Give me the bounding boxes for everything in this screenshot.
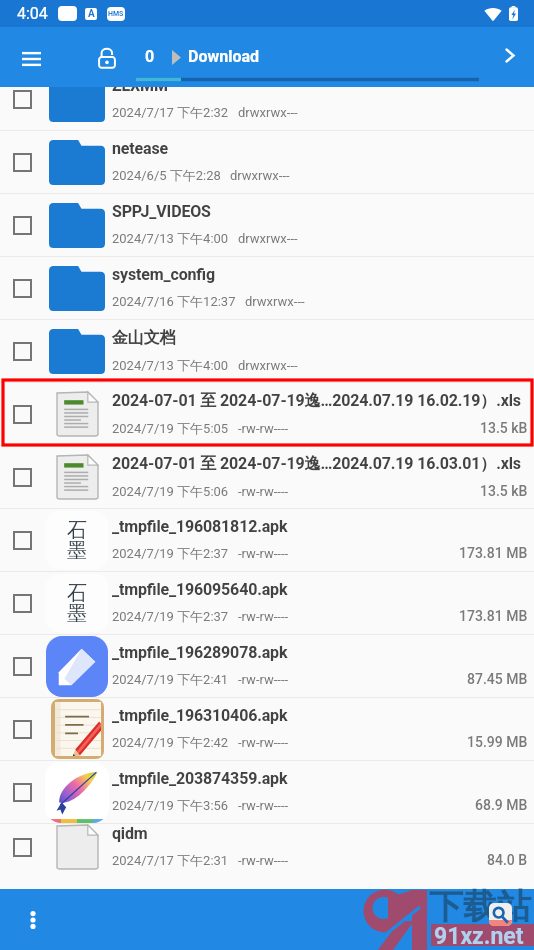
staticText: _tmpfile_196081812.apk (112, 517, 288, 536)
staticText: ZLXMM (112, 87, 168, 95)
button[interactable]: Select ZLXMM (0, 87, 534, 131)
staticText: -rw-rw---- (238, 853, 289, 868)
staticText: drwxrwx--- (238, 358, 298, 373)
staticText: 石 墨 (67, 581, 87, 626)
staticText: drwxrwx--- (245, 294, 305, 309)
button[interactable]: Select _tmpfile_196095640.apk (0, 572, 44, 634)
button[interactable]: Select netease (0, 131, 534, 194)
staticText: 2024/7/19 下午5:05 (112, 420, 229, 436)
staticText: 13.5 kB (480, 483, 528, 499)
button[interactable]: Select netease (0, 131, 44, 193)
button[interactable]: Select _tmpfile_196289078.apk (0, 635, 44, 697)
staticText: 84.0 B (487, 852, 528, 868)
staticText: 2024-07-01 至 2024-07-19逸…2024.07.19 16.0… (112, 391, 521, 411)
staticText: -rw-rw---- (238, 609, 289, 624)
button[interactable]: Select 2024-07-01 至 2024-07-19逸…2024.07.… (0, 383, 534, 446)
staticText: drwxrwx--- (230, 168, 290, 183)
staticText: 2024/7/19 下午2:42 (112, 734, 229, 750)
staticText: 2024/7/19 下午3:56 (112, 797, 229, 813)
button[interactable]: Select qidm (0, 824, 44, 870)
button[interactable]: Select _tmpfile_196081812.apk (0, 509, 534, 572)
button[interactable]: Forward (492, 37, 528, 73)
staticText: 金山文档 (112, 328, 176, 348)
staticText: _tmpfile_203874359.apk (112, 769, 288, 788)
staticText: 87.45 MB (467, 671, 528, 687)
staticText: 0 (145, 47, 155, 66)
button[interactable]: Select system_config (0, 257, 534, 320)
staticText: 91xz.net (434, 923, 524, 945)
staticText: 2024/7/13 下午4:00 (112, 230, 229, 246)
staticText: 2024/7/13 下午4:00 (112, 357, 229, 373)
staticText: Download (188, 47, 259, 66)
button[interactable]: Select qidm (0, 824, 534, 870)
staticText: -rw-rw---- (238, 546, 289, 561)
button[interactable]: Select 金山文档 (0, 320, 534, 383)
staticText: 2024/7/19 下午2:41 (112, 671, 229, 687)
button[interactable]: More options (16, 903, 50, 937)
staticText: SPPJ_VIDEOS (112, 202, 211, 221)
staticText: 2024/7/19 下午2:37 (112, 545, 229, 561)
staticText: -rw-rw---- (238, 798, 289, 813)
staticText: 173.81 MB (459, 608, 528, 624)
button[interactable]: Select system_config (0, 257, 44, 319)
button[interactable]: Select ZLXMM (0, 87, 44, 130)
button[interactable]: Unlock (88, 39, 125, 76)
staticText: -rw-rw---- (238, 421, 289, 436)
button[interactable]: Select 2024-07-01 至 2024-07-19逸…2024.07.… (0, 383, 44, 445)
button[interactable]: Select _tmpfile_203874359.apk (0, 761, 534, 824)
button[interactable]: Menu (13, 41, 49, 77)
staticText: 2024/7/19 下午5:06 (112, 483, 229, 499)
staticText: netease (112, 139, 169, 158)
button[interactable]: Select SPPJ_VIDEOS (0, 194, 44, 256)
button[interactable]: Select 金山文档 (0, 320, 44, 382)
staticText: -rw-rw---- (238, 735, 289, 750)
staticText: A (88, 8, 95, 20)
button[interactable]: Select _tmpfile_196095640.apk (0, 572, 534, 635)
button[interactable]: Select 2024-07-01 至 2024-07-19逸…2024.07.… (0, 446, 44, 508)
staticText: 石 墨 (67, 518, 87, 563)
staticText: 2024-07-01 至 2024-07-19逸…2024.07.19 16.0… (112, 454, 521, 474)
staticText: 下载站 (429, 885, 531, 928)
staticText: 2024/7/17 下午2:32 (112, 104, 229, 120)
staticText: 15.99 MB (467, 734, 528, 750)
staticText: HMS (108, 10, 124, 18)
button[interactable]: Select _tmpfile_196310406.apk (0, 698, 44, 760)
staticText: 2024/7/19 下午2:37 (112, 608, 229, 624)
staticText: 4:04 (17, 4, 48, 23)
button[interactable]: Select _tmpfile_196310406.apk (0, 698, 534, 761)
staticText: qidm (112, 824, 148, 843)
staticText: 2024/7/17 下午2:31 (112, 852, 229, 868)
staticText: drwxrwx--- (238, 105, 298, 120)
button[interactable]: Select SPPJ_VIDEOS (0, 194, 534, 257)
button[interactable]: Select _tmpfile_196081812.apk (0, 509, 44, 571)
staticText: drwxrwx--- (238, 231, 298, 246)
staticText: 68.9 MB (475, 797, 528, 813)
staticText: _tmpfile_196095640.apk (112, 580, 288, 599)
staticText: 173.81 MB (459, 545, 528, 561)
button[interactable]: Select _tmpfile_196289078.apk (0, 635, 534, 698)
button[interactable]: Select _tmpfile_203874359.apk (0, 761, 44, 823)
staticText: _tmpfile_196289078.apk (112, 643, 288, 662)
staticText: -rw-rw---- (238, 484, 289, 499)
staticText: 2024/6/5 下午2:28 (112, 167, 221, 183)
staticText: 13.5 kB (480, 420, 528, 436)
staticText: _tmpfile_196310406.apk (112, 706, 288, 725)
staticText: system_config (112, 265, 215, 284)
button[interactable]: Select 2024-07-01 至 2024-07-19逸…2024.07.… (0, 446, 534, 509)
staticText: 2024/7/16 下午12:37 (112, 293, 236, 309)
staticText: -rw-rw---- (238, 672, 289, 687)
